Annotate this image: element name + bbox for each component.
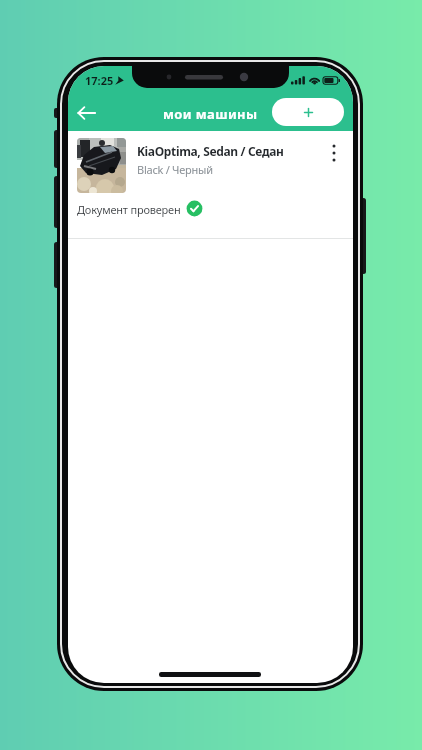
staticText: Black / Черный <box>137 162 213 177</box>
button[interactable] <box>272 98 344 126</box>
staticText: KiaOptima, Sedan / Седан <box>137 143 284 159</box>
staticText: Документ проверен <box>77 202 181 217</box>
button[interactable] <box>323 140 345 166</box>
staticText: мои машины <box>163 105 258 121</box>
button[interactable] <box>70 99 104 127</box>
staticText: 17:25 <box>85 73 114 88</box>
